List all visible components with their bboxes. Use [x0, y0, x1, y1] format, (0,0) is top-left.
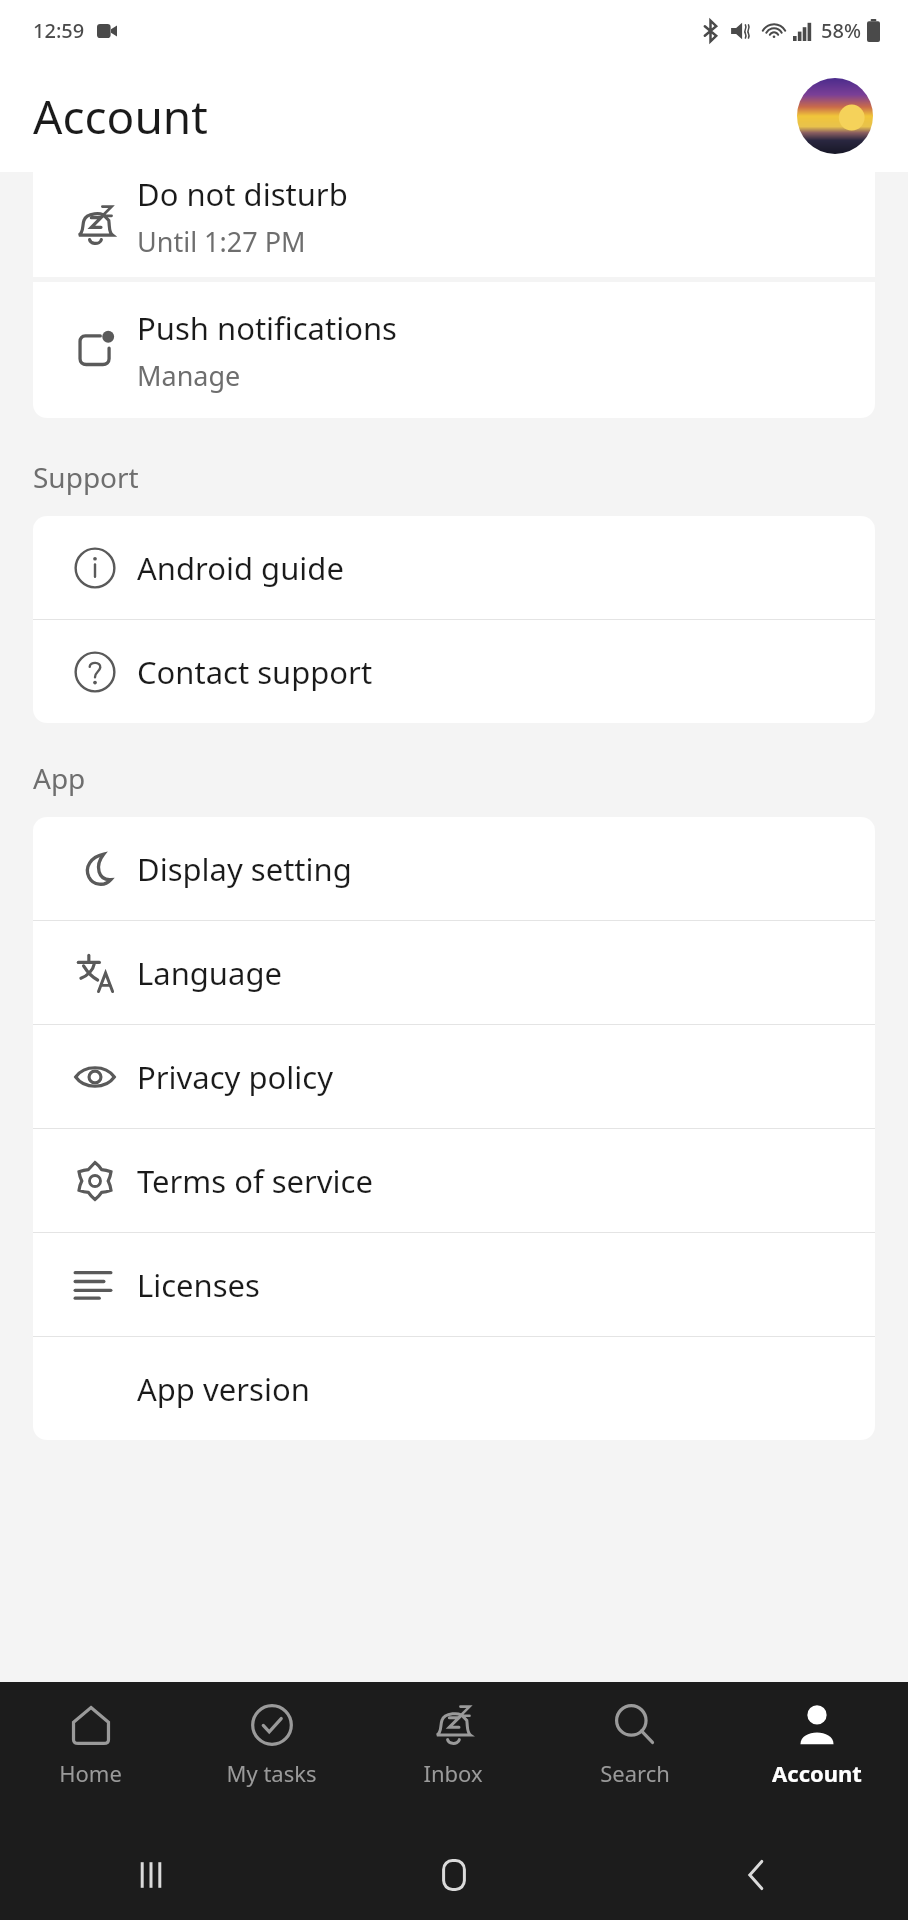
button[interactable]: Terms of service: [33, 1129, 875, 1232]
staticText: Account: [772, 1758, 862, 1788]
staticText: Home: [59, 1758, 122, 1788]
button[interactable]: Display setting: [33, 817, 875, 920]
staticText: App: [33, 759, 86, 797]
staticText: Display setting: [137, 848, 352, 890]
staticText: Terms of service: [137, 1160, 373, 1202]
button[interactable]: Language: [33, 921, 875, 1024]
button[interactable]: Do not disturb: [33, 172, 875, 277]
staticText: Account: [33, 85, 208, 148]
button[interactable]: Contact support: [33, 620, 875, 723]
staticText: Support: [33, 458, 139, 496]
button[interactable]: Android guide: [33, 516, 875, 619]
button[interactable]: Inbox: [362, 1682, 544, 1830]
staticText: Manage: [137, 357, 241, 394]
staticText: Push notifications: [137, 307, 397, 349]
staticText: 58%: [821, 17, 861, 44]
staticText: App version: [137, 1368, 310, 1410]
staticText: Language: [137, 952, 282, 994]
button[interactable]: Licenses: [33, 1233, 875, 1336]
staticText: 12:59: [33, 17, 85, 44]
staticText: My tasks: [226, 1758, 317, 1788]
staticText: Privacy policy: [137, 1056, 333, 1098]
button[interactable]: Push notifications: [33, 282, 875, 418]
staticText: Do not disturb: [137, 173, 348, 215]
button[interactable]: App version: [33, 1337, 875, 1440]
staticText: Until 1:27 PM: [137, 223, 306, 260]
staticText: Licenses: [137, 1264, 260, 1306]
staticText: Android guide: [137, 547, 344, 589]
staticText: Contact support: [137, 651, 373, 693]
staticText: Search: [600, 1758, 670, 1788]
button[interactable]: My tasks: [181, 1682, 362, 1830]
button[interactable]: Account: [726, 1682, 908, 1830]
staticText: Inbox: [423, 1758, 483, 1788]
button[interactable]: Home: [0, 1682, 181, 1830]
button[interactable]: Profile: [797, 78, 873, 154]
button[interactable]: Privacy policy: [33, 1025, 875, 1128]
button[interactable]: Search: [544, 1682, 726, 1830]
